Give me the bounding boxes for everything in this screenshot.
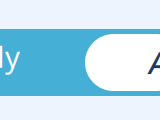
staticText: A [149, 42, 160, 83]
staticText: ly [0, 37, 20, 76]
button[interactable]: A [85, 34, 160, 91]
